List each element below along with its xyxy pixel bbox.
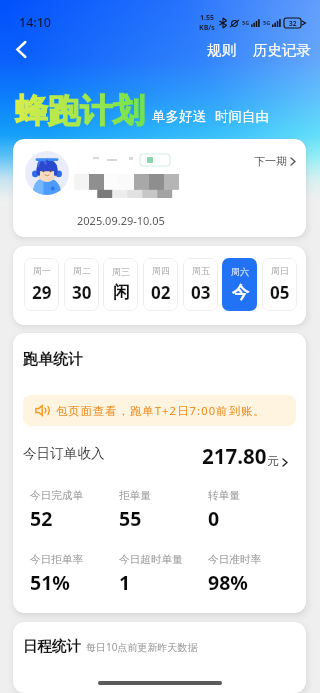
button[interactable]: 今日订单收入 — [13, 436, 306, 476]
staticText: 周六 — [231, 266, 249, 277]
staticText: 规则 — [207, 41, 236, 59]
button[interactable]: 历史记录 — [250, 36, 314, 64]
staticText: 蜂跑计划 — [15, 91, 145, 132]
button[interactable]: 规则 — [204, 36, 239, 64]
staticText: 周五 — [192, 265, 210, 276]
staticText: 14:10 — [19, 14, 52, 31]
staticText: 下一期 — [254, 154, 287, 168]
staticText: 1.55 — [200, 13, 214, 23]
staticText: 闲 — [113, 282, 130, 303]
staticText: 2025.09.29-10.05 — [77, 213, 165, 228]
button[interactable]: 周一 — [24, 258, 59, 311]
staticText: 29 — [32, 281, 52, 304]
staticText: 拒单量 — [119, 489, 151, 502]
button[interactable]: Back — [6, 34, 36, 64]
staticText: 今 — [232, 282, 249, 303]
staticText: 98% — [208, 569, 248, 596]
staticText: 单多好送 — [152, 108, 206, 125]
button[interactable]: 周三 — [103, 258, 138, 311]
staticText: 日程统计 — [23, 637, 81, 655]
staticText: 今日超时单量 — [119, 553, 183, 566]
button[interactable]: 周日 — [262, 258, 297, 311]
staticText: 5G — [263, 19, 271, 26]
staticText: 历史记录 — [253, 41, 311, 59]
staticText: 217.80 — [202, 442, 267, 470]
staticText: 52 — [30, 505, 53, 532]
staticText: 每日10点前更新昨天数据 — [86, 640, 198, 654]
button[interactable]: 包页面查看，跑单T+2日7:00前到账。 — [23, 395, 296, 426]
staticText: 51% — [30, 569, 70, 596]
button[interactable]: 周六 — [222, 258, 257, 311]
staticText: 包页面查看，跑单T+2日7:00前到账。 — [56, 403, 266, 418]
staticText: 03 — [191, 281, 211, 304]
staticText: 0 — [208, 505, 220, 532]
staticText: 30 — [72, 281, 92, 304]
staticText: 今日拒单率 — [30, 553, 83, 566]
staticText: 今日准时率 — [208, 553, 261, 566]
button[interactable]: 周四 — [143, 258, 178, 311]
staticText: 今日订单收入 — [23, 445, 105, 462]
staticText: 时间自由 — [215, 108, 269, 125]
staticText: 元 — [267, 454, 279, 468]
staticText: 周日 — [271, 265, 289, 276]
staticText: 55 — [119, 505, 142, 532]
staticText: 周一 — [33, 265, 51, 276]
button[interactable]: 下一期 — [13, 139, 306, 237]
staticText: 周二 — [73, 265, 91, 276]
staticText: 05 — [270, 281, 290, 304]
staticText: 今日完成单 — [30, 489, 83, 502]
staticText: 跑单统计 — [23, 350, 83, 369]
button[interactable]: 周二 — [64, 258, 99, 311]
staticText: 周三 — [112, 266, 130, 277]
staticText: 5G — [242, 19, 250, 26]
staticText: 02 — [151, 281, 171, 304]
staticText: KB/s — [199, 23, 215, 33]
staticText: 周四 — [152, 265, 170, 276]
staticText: 32 — [289, 19, 297, 28]
staticText: 1 — [119, 569, 131, 596]
button[interactable]: 周五 — [183, 258, 218, 311]
staticText: 转单量 — [208, 489, 240, 502]
